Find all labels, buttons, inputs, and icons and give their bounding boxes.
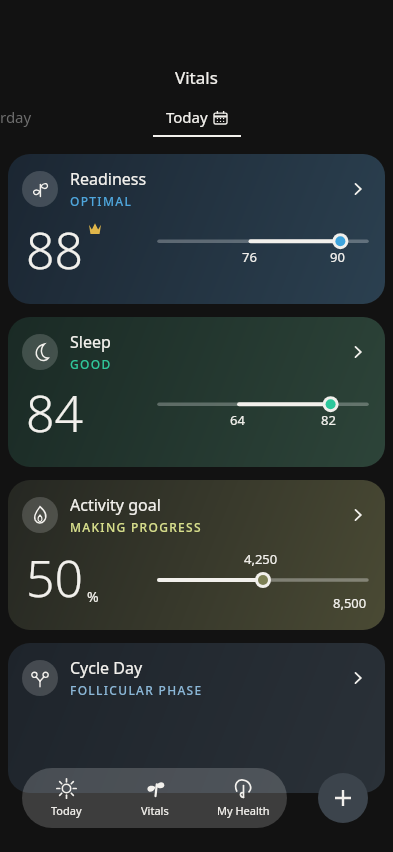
- staticText: 76: [242, 248, 257, 266]
- button[interactable]: Cycle Day: [8, 643, 385, 793]
- button[interactable]: Open Activity goal: [345, 502, 371, 528]
- staticText: 8,500: [333, 594, 367, 612]
- staticText: Today: [166, 107, 208, 127]
- staticText: Vitals: [141, 803, 169, 818]
- staticText: 90: [330, 248, 345, 266]
- staticText: 4,250: [244, 550, 278, 568]
- staticText: Today: [51, 803, 82, 818]
- button[interactable]: Today: [22, 768, 111, 828]
- staticText: Readiness: [70, 168, 147, 190]
- staticText: OPTIMAL: [70, 193, 133, 209]
- staticText: 84: [26, 379, 84, 447]
- button[interactable]: Add: [318, 773, 368, 823]
- staticText: GOOD: [70, 356, 112, 372]
- staticText: 50: [26, 544, 84, 612]
- staticText: FOLLICULAR PHASE: [70, 682, 203, 698]
- button[interactable]: Today: [166, 107, 227, 127]
- staticText: Sleep: [70, 331, 111, 353]
- staticText: My Health: [217, 803, 270, 818]
- staticText: 64: [230, 411, 245, 429]
- staticText: Cycle Day: [70, 657, 143, 679]
- button[interactable]: Vitals: [111, 768, 199, 828]
- button[interactable]: Readiness: [8, 154, 385, 304]
- button[interactable]: rday: [0, 107, 32, 127]
- button[interactable]: Open Readiness: [345, 176, 371, 202]
- staticText: %: [87, 587, 99, 606]
- staticText: 82: [321, 411, 336, 429]
- button[interactable]: Sleep: [8, 317, 385, 467]
- staticText: Activity goal: [70, 494, 161, 516]
- button[interactable]: Activity goal: [8, 480, 385, 630]
- button[interactable]: Open Cycle Day: [345, 665, 371, 691]
- staticText: 88: [26, 216, 84, 284]
- staticText: Vitals: [175, 66, 218, 89]
- button[interactable]: My Health: [199, 768, 287, 828]
- button[interactable]: Open Sleep: [345, 339, 371, 365]
- staticText: MAKING PROGRESS: [70, 519, 202, 535]
